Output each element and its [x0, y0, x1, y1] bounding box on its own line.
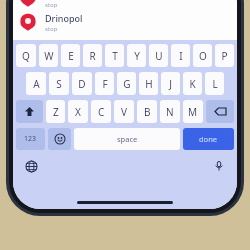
button[interactable]: done [183, 128, 234, 150]
button[interactable]: L [205, 72, 224, 95]
staticText: A [33, 77, 40, 91]
staticText: S [56, 77, 62, 91]
button[interactable]: P [215, 44, 234, 67]
staticText: Q [22, 49, 30, 63]
staticText: 123 [24, 134, 37, 144]
button[interactable]: Y [127, 44, 146, 67]
button[interactable]: V [114, 100, 134, 123]
staticText: stop [45, 25, 58, 33]
staticText: F [102, 77, 108, 91]
button[interactable]: 123 [16, 128, 45, 150]
button[interactable]: E [61, 44, 80, 67]
button[interactable]: Q [16, 44, 36, 67]
staticText: K [189, 77, 196, 91]
button[interactable]: N [160, 100, 180, 123]
staticText: B [144, 105, 151, 119]
button[interactable]: Emoji [48, 128, 71, 150]
staticText: space [117, 134, 138, 144]
staticText: Drinopol [45, 12, 83, 24]
staticText: I [179, 49, 183, 63]
button[interactable]: H [139, 72, 158, 95]
button[interactable]: O [193, 44, 212, 67]
button[interactable]: M [183, 100, 203, 123]
button[interactable]: Backspace [206, 100, 234, 123]
staticText: P [221, 49, 228, 63]
staticText: E [68, 49, 74, 63]
staticText: H [145, 77, 153, 91]
staticText: N [166, 105, 174, 119]
staticText: Z [53, 105, 59, 119]
button[interactable]: T [105, 44, 124, 67]
staticText: O [199, 49, 207, 63]
button[interactable]: U [149, 44, 168, 67]
staticText: stop [45, 1, 58, 9]
staticText: C [98, 105, 105, 119]
button[interactable]: A [26, 72, 46, 95]
staticText: Y [134, 49, 140, 63]
button[interactable]: S [49, 72, 69, 95]
staticText: U [155, 49, 163, 63]
staticText: J [169, 77, 172, 91]
button[interactable]: R [83, 44, 102, 67]
button[interactable]: W [39, 44, 58, 67]
staticText: R [89, 49, 96, 63]
staticText: D [78, 77, 86, 91]
staticText: T [112, 49, 118, 63]
button[interactable]: Voice input [210, 157, 228, 175]
button[interactable]: G [117, 72, 136, 95]
button[interactable]: K [183, 72, 202, 95]
button[interactable]: Újezd [13, 0, 237, 10]
button[interactable]: space [74, 128, 180, 150]
button[interactable]: F [95, 72, 114, 95]
button[interactable]: D [72, 72, 92, 95]
staticText: G [123, 77, 131, 91]
button[interactable]: J [161, 72, 180, 95]
staticText: M [188, 105, 198, 119]
staticText: X [75, 105, 81, 119]
button[interactable]: Change keyboard language [22, 157, 40, 175]
button[interactable]: B [137, 100, 157, 123]
staticText: done [199, 134, 218, 144]
button[interactable]: Drinopol [13, 10, 237, 34]
button[interactable]: I [171, 44, 190, 67]
staticText: W [44, 49, 54, 63]
staticText: L [212, 77, 218, 91]
button[interactable]: C [91, 100, 111, 123]
staticText: V [121, 105, 127, 119]
button[interactable]: Z [46, 100, 65, 123]
button[interactable]: X [68, 100, 88, 123]
button[interactable]: Shift [16, 100, 43, 123]
